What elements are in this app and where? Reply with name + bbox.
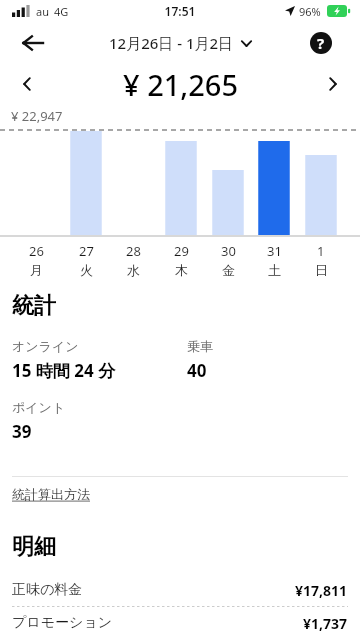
button[interactable]: 1 (298, 242, 344, 278)
button[interactable]: Next week (311, 64, 355, 104)
button[interactable]: 31 (251, 242, 297, 278)
staticText: 15 時間 24 分 (12, 359, 116, 382)
staticText: 12月26日 - 1月2日 (109, 33, 234, 53)
staticText: 火 (80, 262, 93, 278)
staticText: 統計算出方法 (12, 486, 90, 502)
staticText: ポイント (12, 399, 66, 415)
staticText: 28 (126, 242, 141, 260)
staticText: 17:51 (0, 3, 360, 19)
button[interactable]: 26 (13, 242, 59, 278)
staticText: ¥17,811 (295, 581, 348, 600)
staticText: 96% (299, 4, 321, 19)
button[interactable]: 27 (63, 242, 109, 278)
staticText: 27 (79, 242, 94, 260)
button[interactable]: 30 (205, 242, 251, 278)
staticText: 30 (221, 242, 236, 260)
button[interactable]: 12月26日 - 1月2日 (109, 33, 252, 53)
staticText: 明細 (12, 533, 56, 561)
staticText: 4G (54, 4, 69, 19)
staticText: 日 (315, 262, 328, 278)
staticText: 統計 (12, 292, 56, 320)
staticText: 正味の料金 (12, 581, 83, 599)
staticText: 31 (267, 242, 282, 260)
staticText: 金 (222, 262, 235, 278)
staticText: 26 (29, 242, 44, 260)
staticText: オンライン (12, 338, 79, 354)
staticText: 39 (12, 420, 32, 443)
staticText: ¥ 21,265 (123, 65, 238, 104)
staticText: 40 (187, 359, 207, 382)
staticText: au (36, 4, 49, 19)
button[interactable]: Previous week (5, 64, 49, 104)
staticText: プロモーション (12, 614, 112, 632)
button[interactable]: プロモーション (12, 607, 348, 639)
button[interactable]: 正味の料金 (12, 574, 348, 606)
staticText: ¥1,737 (303, 614, 348, 633)
staticText: 29 (174, 242, 189, 260)
staticText: 乗車 (187, 338, 213, 354)
staticText: ? (317, 33, 325, 53)
staticText: 水 (127, 262, 140, 278)
button[interactable]: Back (11, 22, 55, 64)
button[interactable]: Help (299, 22, 343, 64)
button[interactable]: 統計算出方法 (12, 486, 90, 502)
button[interactable]: 28 (110, 242, 156, 278)
button[interactable]: 29 (158, 242, 204, 278)
staticText: 土 (268, 262, 281, 278)
staticText: 月 (30, 262, 43, 278)
staticText: ¥ 22,947 (11, 107, 63, 125)
staticText: 木 (175, 262, 188, 278)
staticText: 1 (317, 242, 325, 260)
